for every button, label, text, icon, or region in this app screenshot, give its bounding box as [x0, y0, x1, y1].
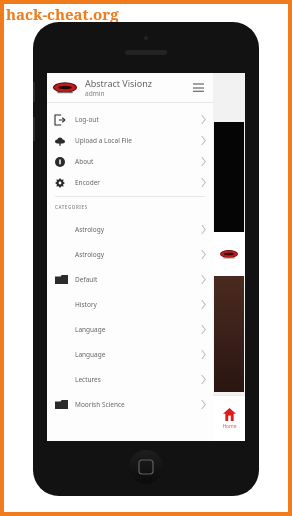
- button[interactable]: Language: [47, 342, 213, 367]
- button[interactable]: Menu: [189, 79, 207, 97]
- staticText: Astrology: [75, 225, 201, 234]
- staticText: Moorish Science: [75, 400, 201, 409]
- staticText: Upload a Local File: [75, 136, 201, 145]
- staticText: Astrology: [75, 250, 201, 259]
- button[interactable]: Moorish Science: [47, 392, 213, 417]
- button[interactable]: Home: [213, 396, 245, 441]
- staticText: Abstract Visionz: [85, 77, 152, 89]
- staticText: History: [75, 300, 201, 309]
- button[interactable]: Language: [47, 317, 213, 342]
- button[interactable]: Log-out: [47, 109, 213, 130]
- button[interactable]: Default: [47, 267, 213, 292]
- staticText: Log-out: [75, 115, 201, 124]
- button[interactable]: About: [47, 151, 213, 172]
- staticText: Lectures: [75, 375, 201, 384]
- button[interactable]: History: [47, 292, 213, 317]
- staticText: CATEGORIES: [55, 204, 88, 210]
- staticText: Language: [75, 350, 201, 359]
- staticText: Default: [75, 275, 201, 284]
- staticText: hack-cheat.org: [6, 4, 119, 24]
- button[interactable]: Upload a Local File: [47, 130, 213, 151]
- staticText: About: [75, 157, 201, 166]
- button[interactable]: Encoder: [47, 172, 213, 193]
- staticText: Home: [222, 423, 237, 430]
- button[interactable]: Lectures: [47, 367, 213, 392]
- staticText: admin: [85, 89, 105, 98]
- staticText: Language: [75, 325, 201, 334]
- button[interactable]: Astrology: [47, 242, 213, 267]
- staticText: Encoder: [75, 178, 201, 187]
- button[interactable]: Abstract Visionz: [47, 73, 213, 102]
- button[interactable]: Astrology: [47, 217, 213, 242]
